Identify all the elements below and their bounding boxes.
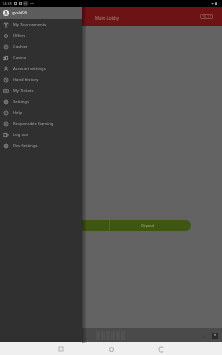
button[interactable]: Account settings bbox=[3, 63, 82, 74]
button[interactable]: Player profile bbox=[210, 331, 219, 340]
button[interactable]: Deposit bbox=[31, 220, 191, 231]
button[interactable]: gvsld05 bbox=[3, 7, 82, 19]
staticText: Cashier bbox=[13, 44, 28, 50]
staticText: My Tournaments bbox=[13, 22, 47, 28]
button[interactable]: Cashier bbox=[3, 41, 82, 52]
staticText: Settings bbox=[13, 99, 29, 105]
staticText: gvsld05 bbox=[12, 10, 28, 16]
staticText: Casino bbox=[13, 55, 27, 61]
button[interactable]: My Tournaments bbox=[3, 19, 82, 30]
button[interactable]: My Tickets bbox=[3, 85, 82, 96]
button[interactable]: 78.17 bbox=[200, 14, 213, 19]
staticText: 78.17 bbox=[202, 14, 212, 19]
button[interactable]: Hand history bbox=[3, 74, 82, 85]
staticText: Dev Settings bbox=[13, 143, 38, 149]
staticText: Offers bbox=[13, 33, 26, 39]
staticText: Log out bbox=[13, 132, 29, 138]
button[interactable]: Dev Settings bbox=[3, 140, 82, 151]
button[interactable]: Responsible Gaming bbox=[3, 118, 82, 129]
button[interactable]: Casino bbox=[3, 52, 82, 63]
button[interactable]: Recents bbox=[55, 343, 67, 355]
staticText: Responsible Gaming bbox=[13, 121, 54, 127]
button[interactable]: Sound bbox=[200, 332, 208, 340]
staticText: Account settings bbox=[13, 66, 46, 72]
staticText: My Tickets bbox=[13, 88, 34, 94]
staticText: 14:38 bbox=[2, 1, 12, 6]
staticText: Help bbox=[13, 110, 23, 116]
button[interactable]: Home bbox=[105, 343, 117, 355]
button[interactable]: Help bbox=[3, 107, 82, 118]
staticText: Hand history bbox=[13, 77, 39, 83]
staticText: Deposit bbox=[141, 223, 154, 228]
button[interactable]: Main Lobby bbox=[95, 15, 119, 21]
button[interactable]: Offers bbox=[3, 30, 82, 41]
button[interactable]: Settings bbox=[3, 96, 82, 107]
button[interactable]: Log out bbox=[3, 129, 82, 140]
button[interactable]: Back bbox=[155, 343, 167, 355]
